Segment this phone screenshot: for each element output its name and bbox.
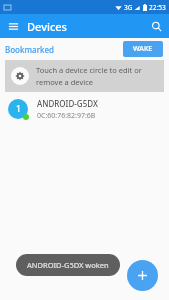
staticText: 3G	[124, 3, 133, 12]
button[interactable]: Open navigation menu	[4, 17, 22, 35]
staticText: WAKE	[133, 44, 153, 54]
staticText: ANDROID-G5DX woken	[27, 260, 109, 270]
staticText: 1	[16, 103, 21, 115]
button[interactable]: Device 1 avatar	[8, 99, 28, 119]
button[interactable]: WAKE	[123, 41, 163, 57]
button[interactable]: Add device	[127, 260, 158, 291]
staticText: 22:53	[149, 3, 166, 12]
button[interactable]: Device 1 avatar	[0, 92, 169, 126]
staticText: Bookmarked	[5, 44, 55, 55]
staticText: 0C:60:76:82:97:6B	[37, 111, 96, 121]
button[interactable]: Touch a device circle to edit or	[5, 60, 164, 92]
button[interactable]: Search	[147, 17, 165, 35]
staticText: Devices	[27, 19, 67, 34]
button[interactable]: ANDROID-G5DX woken	[16, 254, 120, 276]
staticText: remove a device	[36, 77, 93, 87]
staticText: ANDROID-G5DX	[37, 98, 98, 109]
staticText: Touch a device circle to edit or	[36, 65, 142, 75]
